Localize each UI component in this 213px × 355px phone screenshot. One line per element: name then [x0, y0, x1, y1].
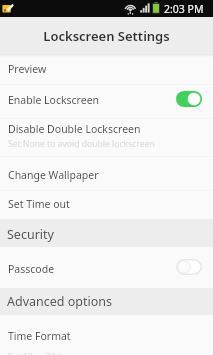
staticText: Time Format	[8, 329, 71, 343]
staticText: Preview	[8, 62, 47, 76]
button[interactable]: Preview	[0, 54, 213, 84]
staticText: Advanced options	[7, 293, 113, 310]
button[interactable]: Enable Lockscreen	[0, 85, 213, 118]
button[interactable]: Change Wallpaper	[0, 157, 213, 190]
button[interactable]: Toggle off	[176, 259, 202, 275]
button[interactable]: Passcode	[0, 247, 213, 288]
button[interactable]: Disable Double Lockscreen	[0, 119, 213, 156]
button[interactable]: Toggle on	[176, 91, 202, 107]
staticText: Disable Double Lockscreen	[8, 122, 141, 136]
staticText: 2:03 PM	[164, 2, 204, 16]
staticText: Passcode	[8, 262, 55, 276]
staticText: Enable Lockscreen	[8, 93, 100, 107]
staticText: Security	[7, 226, 54, 243]
button[interactable]: Time Format	[0, 315, 213, 355]
staticText: Change Wallpaper	[8, 168, 99, 182]
staticText: Set Time out	[8, 197, 70, 211]
button[interactable]: Set Time out	[0, 191, 213, 219]
staticText: Lockscreen Settings	[43, 27, 170, 45]
staticText: Set 12 or 24 hours	[8, 351, 82, 355]
staticText: Set None to avoid double lockscreen	[8, 138, 155, 150]
other: Status icons	[0, 0, 213, 17]
